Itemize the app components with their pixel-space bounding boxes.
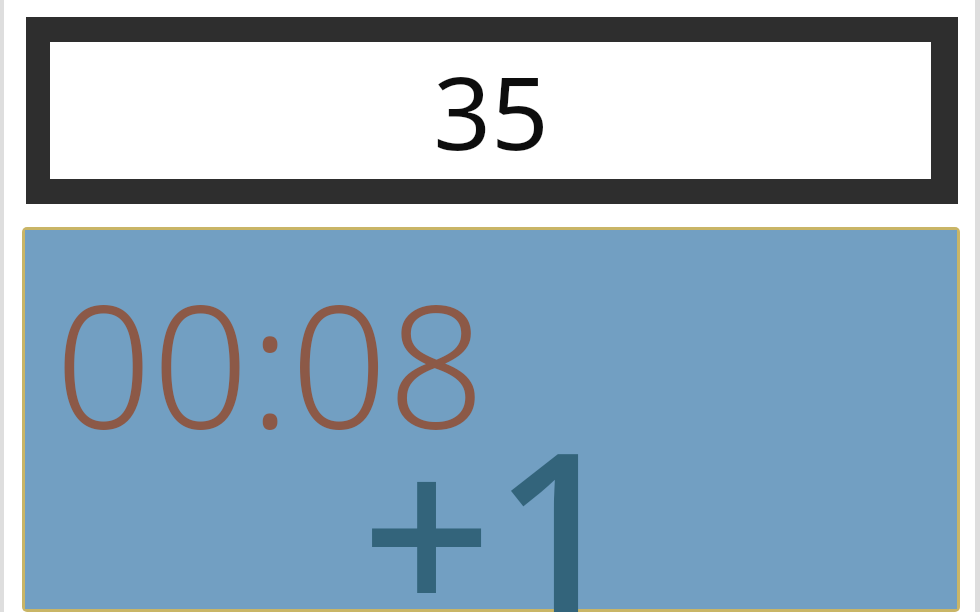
staticText: +1 (361, 372, 625, 612)
staticText: 00:08 (55, 246, 485, 478)
staticText: 35 (433, 42, 549, 179)
button[interactable]: Add one, elapsed 00:08 (25, 230, 957, 609)
button[interactable]: Score 35 (26, 17, 958, 204)
